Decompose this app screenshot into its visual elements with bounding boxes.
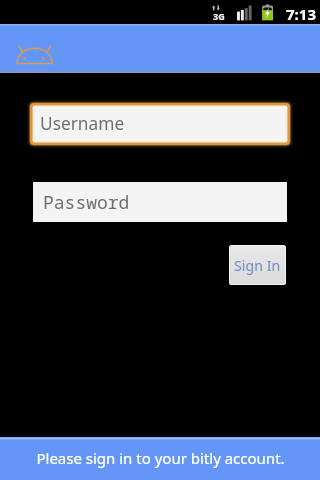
staticText: 3G [213, 10, 225, 22]
button[interactable]: Password [33, 182, 287, 222]
button[interactable]: Home [12, 30, 58, 70]
button[interactable]: Sign In [229, 245, 286, 285]
staticText: Password [43, 190, 130, 215]
button[interactable]: Username [29, 102, 291, 146]
staticText: 7:13 [286, 4, 316, 24]
staticText: Please sign in to your bitly account. [36, 448, 285, 468]
staticText: Sign In [234, 256, 281, 275]
staticText: Username [40, 112, 125, 136]
